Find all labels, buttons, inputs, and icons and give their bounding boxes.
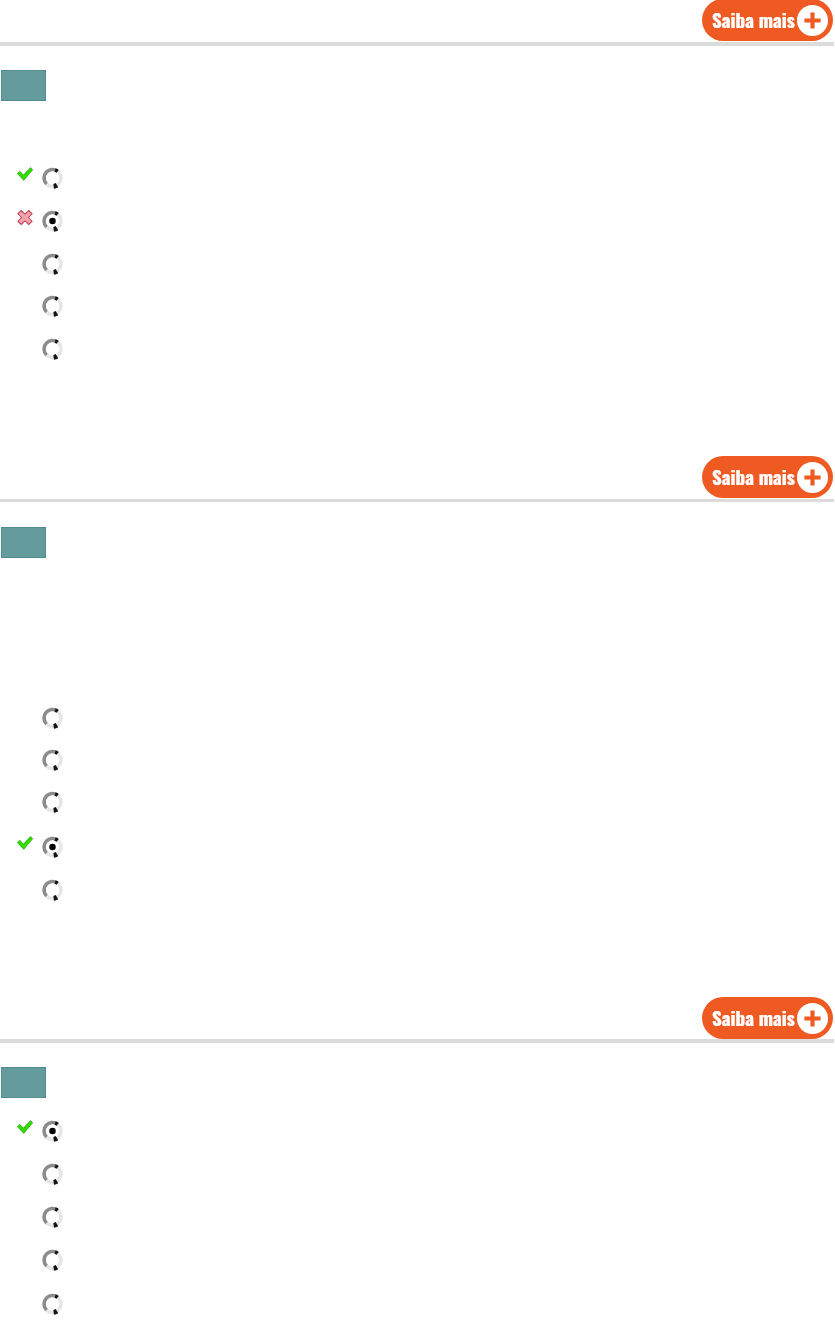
staticText: Saiba mais [712, 5, 795, 33]
button[interactable]: Correct answer option [0, 836, 835, 858]
button[interactable]: Correct answer option [0, 1120, 835, 1142]
button[interactable]: Answer option [0, 295, 835, 317]
button[interactable]: Answer option [0, 1206, 835, 1228]
button[interactable]: Question image [1, 1067, 46, 1098]
button[interactable]: Answer option [0, 791, 835, 813]
button[interactable]: Saiba mais [702, 997, 833, 1039]
button[interactable]: Question image [1, 527, 46, 558]
button[interactable]: Saiba mais [702, 0, 833, 41]
button[interactable]: Answer option [0, 879, 835, 901]
button[interactable]: Answer option [0, 707, 835, 729]
other: Saiba mais [702, 456, 833, 498]
staticText: Saiba mais [712, 1003, 795, 1031]
button[interactable]: Correct answer option [0, 167, 835, 189]
other: Saiba mais [702, 0, 833, 41]
button[interactable]: Answer option [0, 1163, 835, 1185]
button[interactable]: Answer option [0, 1293, 835, 1315]
other: Saiba mais [702, 997, 833, 1039]
button[interactable]: Answer option [0, 749, 835, 771]
staticText: Saiba mais [712, 462, 795, 490]
button[interactable]: Answer option [0, 253, 835, 275]
button[interactable]: Saiba mais [702, 456, 833, 498]
button[interactable]: Incorrect answer option [0, 210, 835, 232]
button[interactable]: Question image [1, 70, 46, 101]
button[interactable]: Answer option [0, 1249, 835, 1271]
button[interactable]: Answer option [0, 338, 835, 360]
